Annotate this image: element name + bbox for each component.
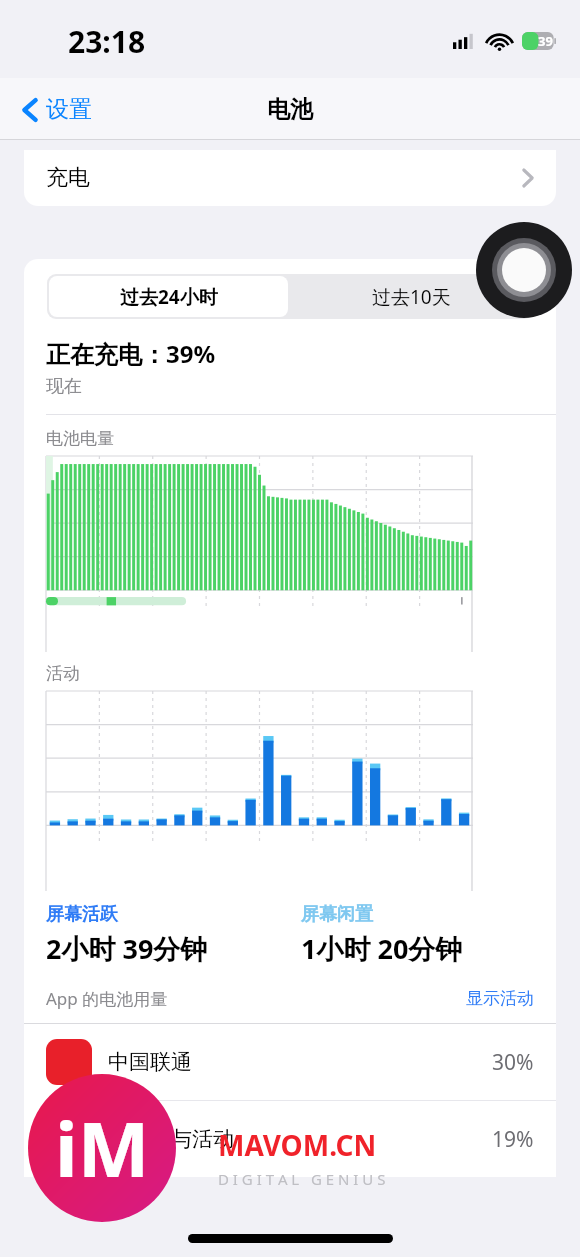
button[interactable]: 过去10天 [290, 274, 533, 319]
staticText: 19% [492, 1125, 534, 1154]
staticText: 现在 [46, 375, 82, 398]
staticText: App 的电池用量 [46, 987, 168, 1010]
button[interactable]: 设置 [18, 89, 96, 130]
button[interactable]: 过去24小时 [49, 276, 288, 317]
staticText: 电池电量 [46, 428, 114, 449]
staticText: 39 [538, 32, 553, 50]
staticText: 电池 [267, 95, 313, 124]
staticText: 充电 [46, 164, 90, 192]
staticText: D I G I T A L G E N I U S [218, 1169, 386, 1189]
button[interactable]: 中国联通 [24, 1024, 556, 1100]
staticText: 2小时 39分钟 [46, 930, 208, 967]
staticText: 主屏幕与活动 [108, 1126, 234, 1152]
staticText: 23:18 [68, 21, 146, 62]
staticText: 屏幕活跃 [46, 903, 118, 926]
staticText: 过去24小时 [120, 284, 218, 310]
button[interactable]: 显示活动 [466, 988, 534, 1009]
staticText: 屏幕闲置 [301, 903, 373, 926]
staticText: 活动 [46, 663, 80, 684]
staticText: 中国联通 [108, 1049, 192, 1075]
staticText: 过去10天 [372, 284, 451, 310]
staticText: 1小时 20分钟 [301, 930, 463, 967]
staticText: iM [55, 1096, 150, 1200]
staticText: MAVOM.CN [218, 1126, 377, 1164]
staticText: 设置 [46, 95, 92, 124]
button[interactable]: 充电 [24, 150, 556, 206]
staticText: 正在充电：39% [46, 337, 216, 370]
button[interactable]: 主屏幕与活动 [24, 1101, 556, 1177]
staticText: 30% [492, 1048, 534, 1077]
